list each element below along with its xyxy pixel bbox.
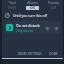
button[interactable]: Duration bbox=[2, 11, 63, 20]
button[interactable]: Alarms bbox=[21, 1, 43, 10]
staticText: 00:00 bbox=[8, 6, 16, 10]
staticText: Until you turn this off bbox=[13, 13, 47, 18]
other: Duration bbox=[5, 13, 10, 18]
button[interactable]: Mute bbox=[44, 25, 50, 31]
staticText: Only alarms bbox=[16, 29, 33, 33]
staticText: MORE SETTINGS bbox=[18, 52, 42, 56]
staticText: Total bbox=[8, 1, 16, 5]
staticText: Off bbox=[51, 6, 56, 10]
button[interactable]: Do not disturb bbox=[4, 21, 61, 34]
button[interactable]: Priority bbox=[43, 1, 63, 10]
staticText: Priority bbox=[48, 1, 59, 5]
staticText: ON bbox=[30, 6, 35, 10]
staticText: DONE bbox=[49, 52, 58, 56]
staticText: Do not disturb bbox=[16, 23, 40, 28]
button[interactable]: DONE bbox=[47, 51, 60, 57]
button[interactable]: Total bbox=[2, 1, 21, 10]
button[interactable]: Settings bbox=[53, 25, 59, 31]
staticText: Alarms bbox=[27, 1, 38, 5]
button[interactable]: MORE SETTINGS bbox=[16, 51, 44, 57]
